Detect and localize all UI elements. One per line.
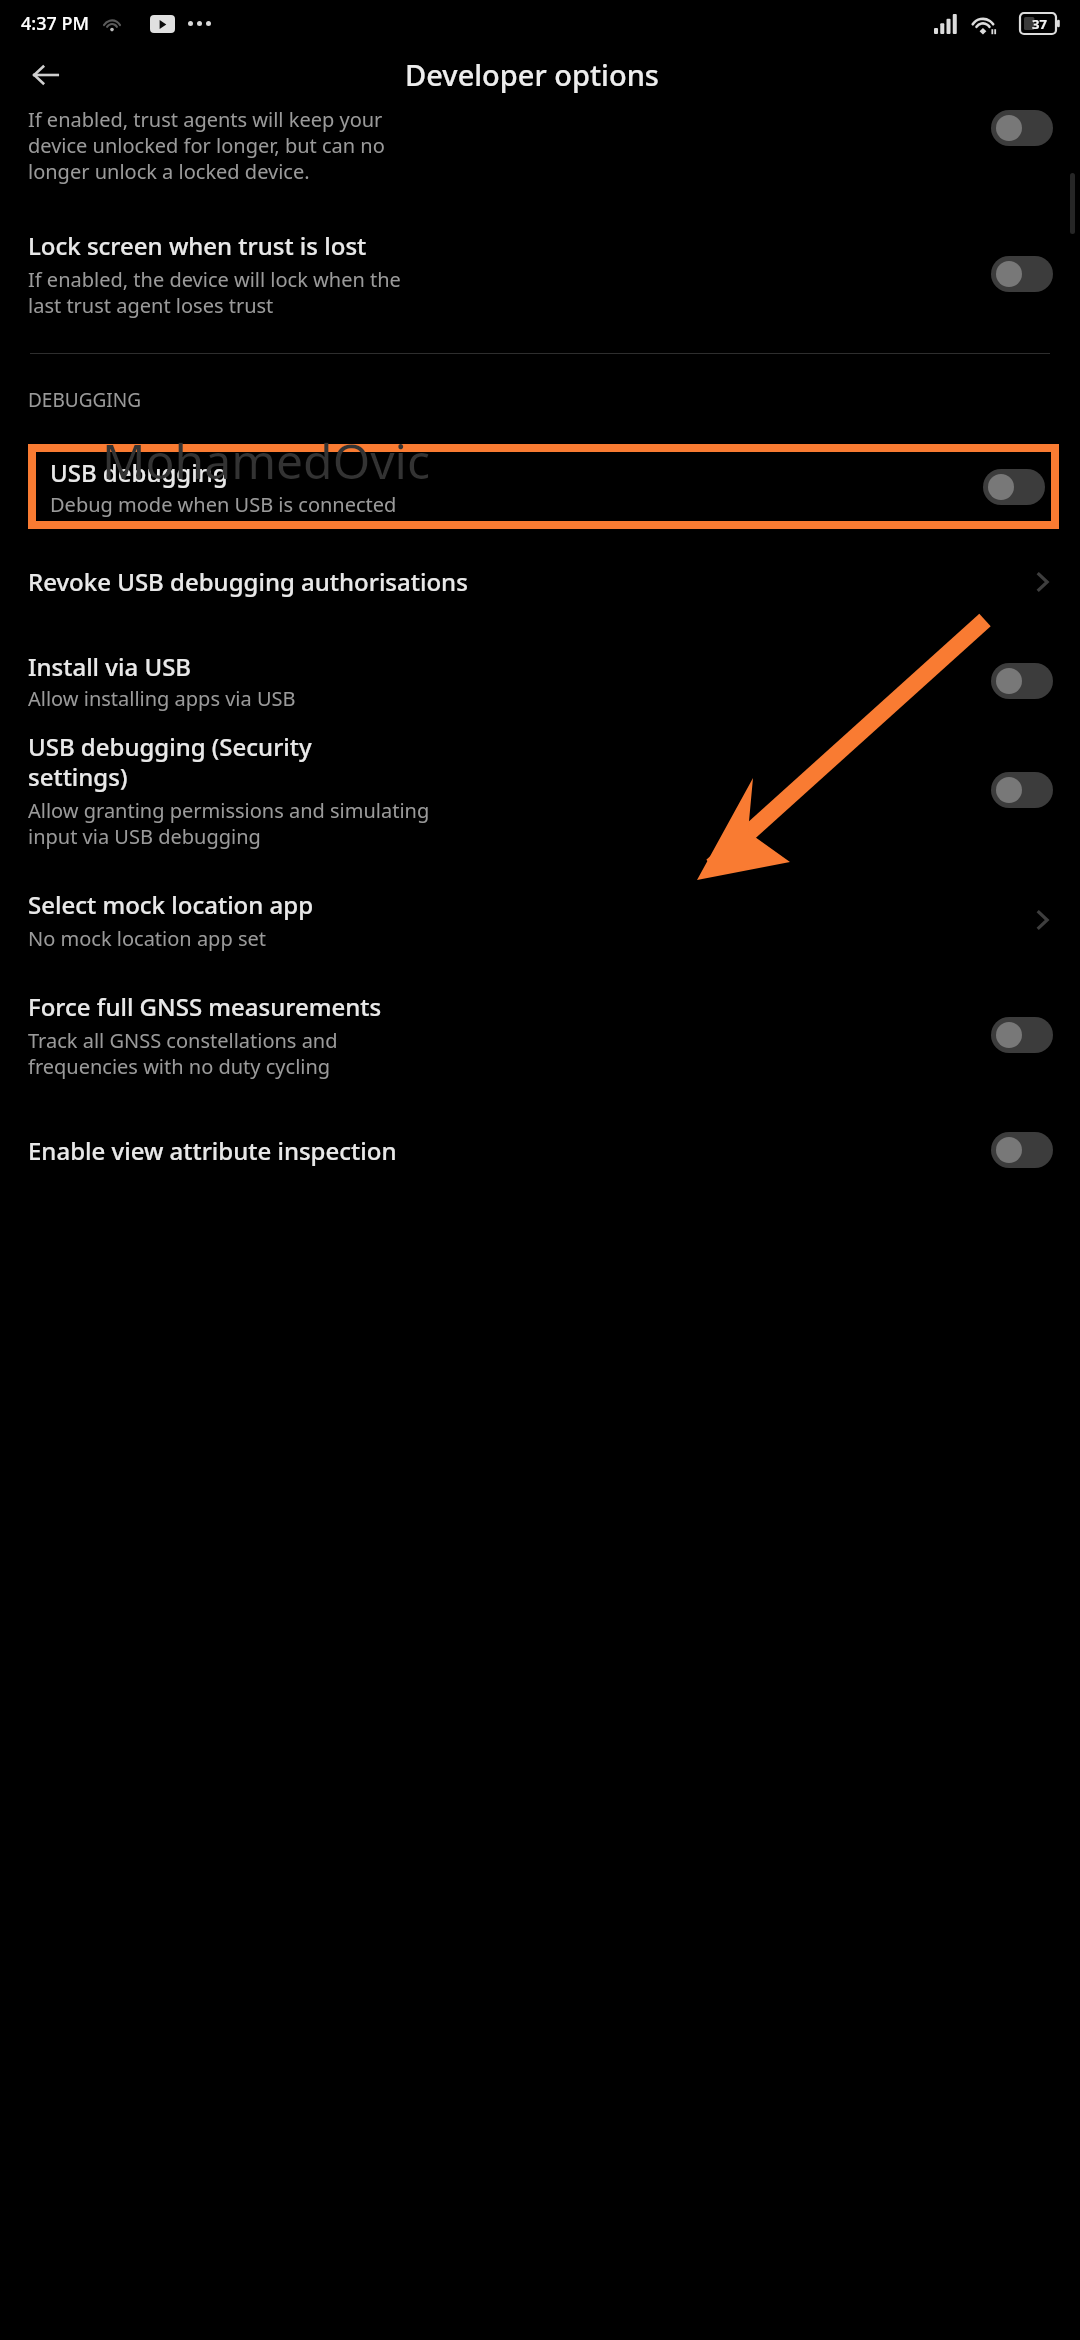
staticText: Revoke USB debugging authorisations xyxy=(28,565,1030,598)
button[interactable]: Enable view attribute inspection xyxy=(0,1132,1080,1168)
staticText: Developer options xyxy=(405,55,659,94)
button[interactable]: Select mock location app xyxy=(0,888,1080,952)
staticText: USB debugging (Security settings) xyxy=(28,730,312,793)
staticText: 4:37 PM xyxy=(21,11,89,36)
button[interactable]: Install via USB xyxy=(0,650,1080,712)
button[interactable]: Toggle xyxy=(991,663,1053,699)
button[interactable]: Toggle xyxy=(991,110,1053,146)
button[interactable]: If enabled, trust agents will keep your … xyxy=(0,102,1080,185)
button[interactable]: Lock screen when trust is lost xyxy=(0,229,1080,319)
button[interactable]: Toggle xyxy=(991,1017,1053,1053)
staticText: Debug mode when USB is connected xyxy=(50,491,397,518)
staticText: Allow installing apps via USB xyxy=(28,685,296,712)
staticText: If enabled, trust agents will keep your … xyxy=(28,106,991,185)
button[interactable]: Toggle xyxy=(991,772,1053,808)
staticText: Track all GNSS constellations and freque… xyxy=(28,1027,338,1080)
button[interactable]: Revoke USB debugging authorisations xyxy=(0,565,1080,598)
staticText: 37 xyxy=(1032,15,1047,33)
button[interactable]: Force full GNSS measurements xyxy=(0,990,1080,1080)
staticText: Install via USB xyxy=(28,650,192,683)
button[interactable]: USB debugging (Security settings) xyxy=(0,730,1080,850)
staticText: Select mock location app xyxy=(28,888,314,921)
staticText: Allow granting permissions and simulatin… xyxy=(28,797,430,850)
staticText: If enabled, the device will lock when th… xyxy=(28,266,401,319)
button[interactable]: Toggle xyxy=(991,256,1053,292)
staticText: Force full GNSS measurements xyxy=(28,990,382,1023)
button[interactable]: Toggle xyxy=(991,1132,1053,1168)
staticText: DEBUGGING xyxy=(28,387,142,413)
button[interactable]: Back xyxy=(24,53,68,97)
staticText: No mock location app set xyxy=(28,925,266,952)
staticText: MohamedOvic xyxy=(102,428,430,493)
staticText: Lock screen when trust is lost xyxy=(28,229,367,262)
button[interactable]: USB debugging xyxy=(36,452,1051,521)
button[interactable]: Toggle xyxy=(983,469,1045,505)
staticText: USB debugging xyxy=(50,456,228,489)
staticText: Enable view attribute inspection xyxy=(28,1134,991,1167)
